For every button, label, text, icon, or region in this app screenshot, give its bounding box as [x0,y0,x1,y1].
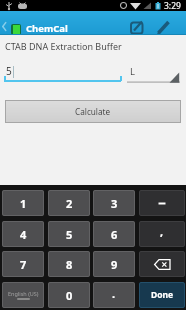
staticText: Done [151,289,174,301]
staticText: 2 [66,196,73,211]
button[interactable]: , [139,221,185,247]
staticText: , [160,224,164,239]
button[interactable]: Done [139,282,185,308]
staticText: . [112,286,116,301]
button[interactable]: . [93,282,135,308]
staticText: 6 [111,227,118,242]
button[interactable] [139,251,185,277]
staticText: 3 [111,196,118,211]
staticText: English (US) [8,290,39,297]
button[interactable] [153,18,177,37]
staticText: 7 [20,257,27,272]
button[interactable]: 2 [48,190,90,216]
button[interactable]: 4 [2,221,44,247]
button[interactable]: L [127,62,180,83]
button[interactable] [139,190,185,216]
staticText: 0 [66,288,73,303]
staticText: 3:29 [164,0,181,11]
button[interactable]: 0 [48,282,90,308]
button[interactable]: 9 [93,251,135,277]
button[interactable]: 5 [48,221,90,247]
button[interactable]: 8 [48,251,90,277]
staticText: 1 [20,196,27,211]
staticText: 8 [66,257,73,272]
button[interactable] [127,18,151,37]
button[interactable]: 6 [93,221,135,247]
button[interactable]: 3 [93,190,135,216]
staticText: L [130,65,135,78]
staticText: Calculate [75,106,111,117]
staticText: ChemCal [26,22,68,35]
staticText: 5 [66,227,73,242]
staticText: 5 [6,64,12,78]
button[interactable]: Calculate [5,100,181,123]
button[interactable]: 1 [2,190,44,216]
button[interactable]: English (US) [2,282,44,308]
staticText: 9 [111,257,118,272]
staticText: 4 [20,227,27,242]
button[interactable]: 7 [2,251,44,277]
staticText: CTAB DNA Extraction Buffer [5,40,122,52]
